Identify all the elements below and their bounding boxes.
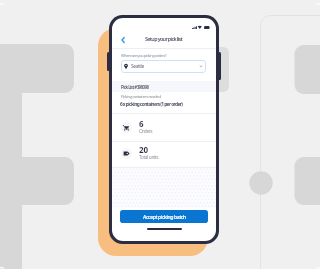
staticText: 6 x picking containers (1 per order)	[120, 101, 183, 108]
button[interactable]: Back	[119, 35, 127, 45]
staticText: Accept picking batch	[143, 213, 186, 220]
staticText: Pick List #398098	[121, 84, 149, 90]
staticText: Where are you picking orders?	[121, 53, 167, 59]
staticText: 20	[139, 144, 149, 155]
staticText: Total units	[139, 154, 159, 161]
button[interactable]: 20	[112, 138, 216, 165]
staticText: Setup your pick list	[145, 35, 183, 42]
staticText: 6	[139, 118, 144, 129]
staticText: Seattle	[131, 63, 144, 70]
button[interactable]: Seattle	[121, 60, 206, 73]
staticText: Picking containers needed:	[121, 94, 161, 100]
staticText: Orders	[139, 128, 153, 135]
button[interactable]: Accept picking batch	[120, 210, 208, 223]
button[interactable]: 6	[112, 112, 216, 139]
